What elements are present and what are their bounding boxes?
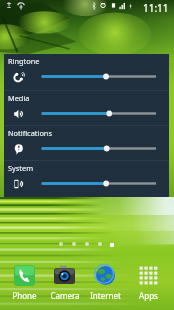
button[interactable]: Apps bbox=[133, 265, 164, 301]
button[interactable]: Media bbox=[4, 91, 169, 125]
staticText: Apps bbox=[139, 290, 158, 301]
button[interactable]: System bbox=[4, 161, 169, 197]
staticText: Internet bbox=[90, 290, 121, 301]
button[interactable]: Internet bbox=[90, 265, 121, 301]
button[interactable]: Ringtone bbox=[4, 54, 169, 90]
staticText: System bbox=[8, 163, 34, 173]
staticText: Ringtone bbox=[8, 56, 40, 66]
staticText: 11:11 bbox=[143, 1, 169, 14]
button[interactable]: Phone bbox=[9, 265, 40, 301]
staticText: Camera bbox=[50, 290, 80, 301]
staticText: Media bbox=[8, 93, 30, 103]
staticText: Notifications bbox=[8, 128, 52, 138]
staticText: Phone bbox=[12, 290, 37, 301]
button[interactable]: Camera bbox=[49, 265, 80, 301]
button[interactable]: Notifications bbox=[4, 126, 169, 160]
